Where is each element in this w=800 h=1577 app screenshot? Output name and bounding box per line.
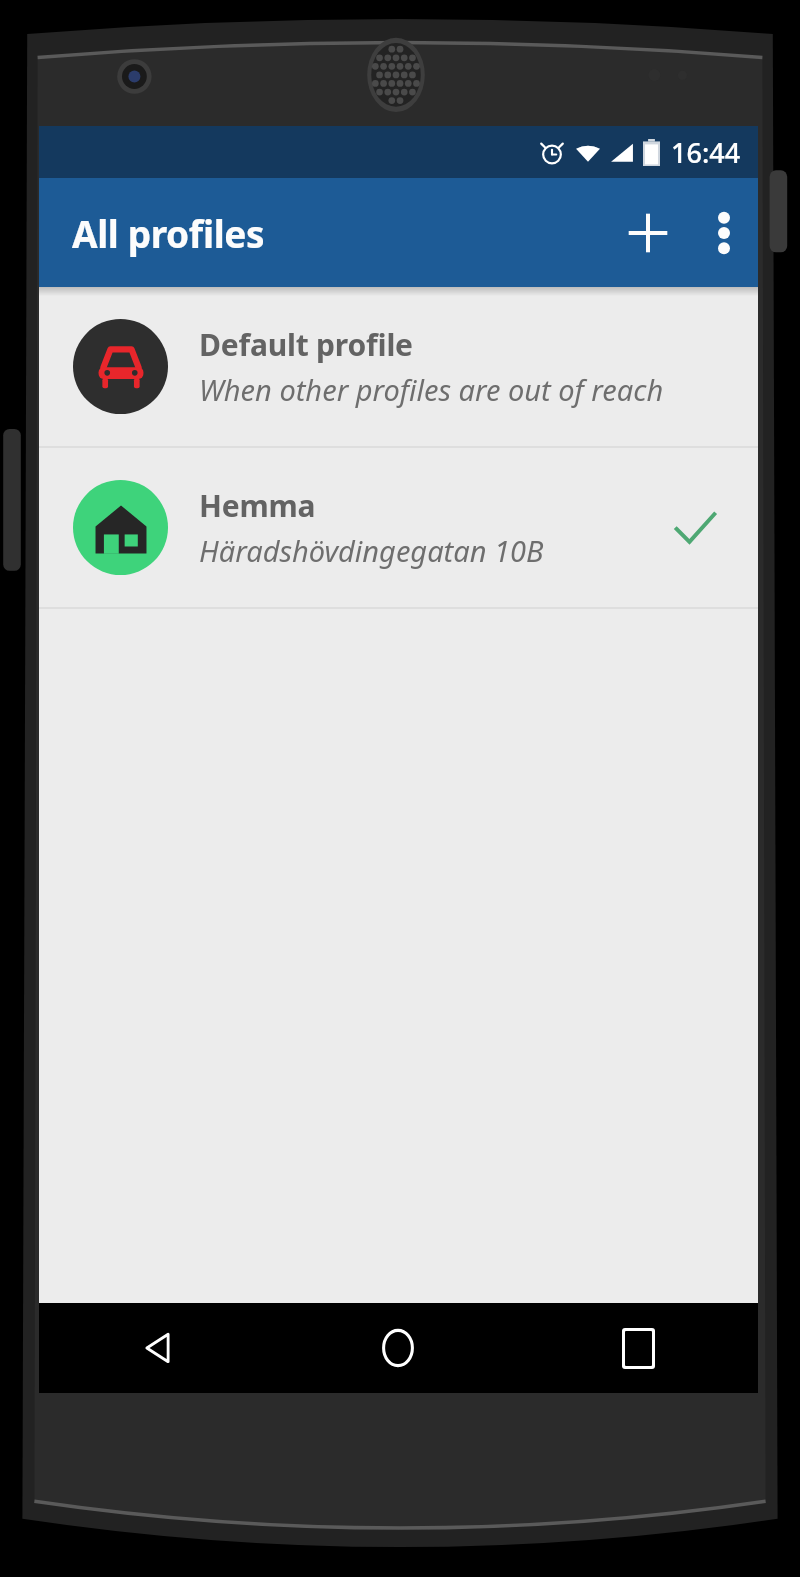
button[interactable]: Selected bbox=[662, 495, 728, 561]
staticText: Häradshövdingegatan 10B bbox=[199, 531, 544, 570]
staticText: 16:44 bbox=[671, 134, 741, 171]
staticText: When other profiles are out of reach bbox=[199, 370, 664, 409]
button[interactable]: Back bbox=[39, 1303, 278, 1393]
staticText: Default profile bbox=[199, 324, 413, 365]
button[interactable]: Add profile bbox=[606, 191, 690, 275]
button[interactable]: Recent apps bbox=[518, 1303, 758, 1393]
staticText: All profiles bbox=[72, 208, 265, 258]
button[interactable]: Home bbox=[278, 1303, 518, 1393]
button[interactable]: Default profile bbox=[39, 287, 758, 446]
button[interactable]: More options bbox=[690, 191, 758, 275]
button[interactable]: Hemma bbox=[39, 448, 758, 607]
staticText: Hemma bbox=[199, 485, 316, 526]
